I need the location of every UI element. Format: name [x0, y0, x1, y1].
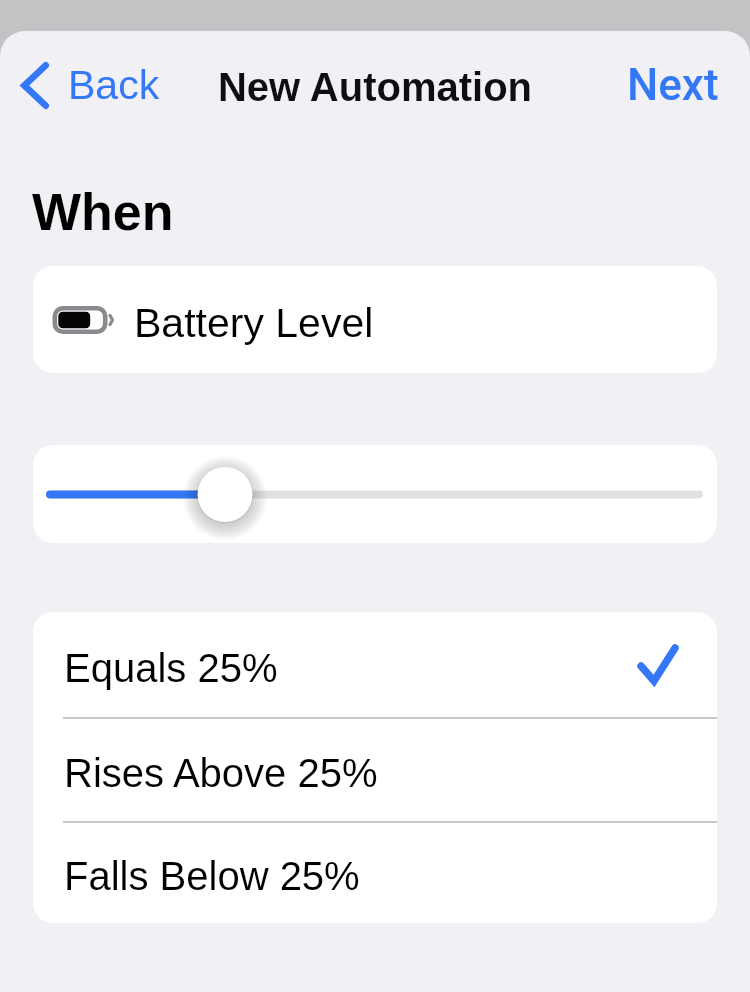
button[interactable]: Back	[9, 51, 168, 114]
button[interactable]: Falls Below 25%	[33, 821, 717, 923]
button[interactable]: Battery level slider	[33, 445, 717, 543]
button[interactable]: Rises Above 25%	[33, 717, 717, 821]
button[interactable]: Next	[623, 52, 723, 118]
staticText: Falls Below 25%	[64, 854, 360, 899]
staticText: New Automation	[0, 65, 750, 110]
staticText: Equals 25%	[64, 646, 278, 691]
staticText: Back	[68, 62, 160, 108]
staticText: Battery Level	[134, 300, 374, 346]
button[interactable]: Equals 25%	[33, 612, 717, 717]
staticText: Rises Above 25%	[64, 751, 378, 796]
staticText: Next	[627, 59, 719, 111]
staticText: When	[32, 183, 174, 241]
button[interactable]: Battery Level	[33, 266, 717, 373]
